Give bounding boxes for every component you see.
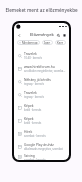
staticText: kedd · keresés — [24, 121, 42, 125]
button[interactable]: Google Play áruház — [14, 140, 69, 153]
button[interactable]: Hírek — [14, 127, 69, 140]
staticText: Előzmények — [30, 32, 54, 38]
staticText: szombat · keresés — [24, 134, 46, 138]
staticText: Képek — [24, 116, 34, 120]
button[interactable]: Vissza — [16, 32, 22, 38]
staticText: www.hirekforum.hu — [24, 64, 55, 68]
button[interactable]: www.hirekforum.hu — [14, 62, 69, 75]
staticText: Mindennap — [22, 41, 38, 45]
button[interactable]: Képek — [14, 114, 69, 127]
button[interactable]: Sziving — [14, 153, 69, 160]
button[interactable]: Képek — [14, 101, 69, 114]
staticText: Hírek — [24, 129, 33, 133]
staticText: Keresések — [57, 41, 64, 45]
staticText: Néhány jó kérdés — [24, 77, 51, 81]
button[interactable]: Néhány jó kérdés — [14, 75, 69, 88]
button[interactable]: Travelek — [14, 49, 69, 62]
button[interactable]: Mindennap — [17, 40, 40, 45]
button[interactable]: Igen — [42, 40, 53, 45]
staticText: Elemeket ment az előzményekbe — [5, 7, 78, 13]
button[interactable]: Törlés — [61, 32, 67, 38]
button[interactable]: Travelek — [14, 88, 69, 101]
staticText: az oldalon megtekintve, szombat, ma — [24, 69, 66, 73]
staticText: tegnap · keresés — [24, 95, 44, 99]
staticText: Képek — [24, 103, 34, 107]
button[interactable]: Keresés — [55, 32, 61, 38]
staticText: szombat · keresés — [24, 158, 46, 160]
staticText: Google Play áruház — [24, 142, 54, 146]
button[interactable]: Keresések — [55, 40, 66, 45]
staticText: Sziving — [24, 153, 35, 157]
staticText: Igen — [44, 41, 51, 45]
staticText: Travelek — [24, 51, 37, 55]
staticText: tegnap · keresés — [24, 82, 44, 86]
staticText: 10:40 · keresés — [24, 56, 42, 60]
staticText: alkalmazás megnyitva, szombat — [24, 147, 63, 151]
staticText: Travelek — [24, 90, 37, 94]
staticText: kedd · keresés — [24, 108, 42, 112]
